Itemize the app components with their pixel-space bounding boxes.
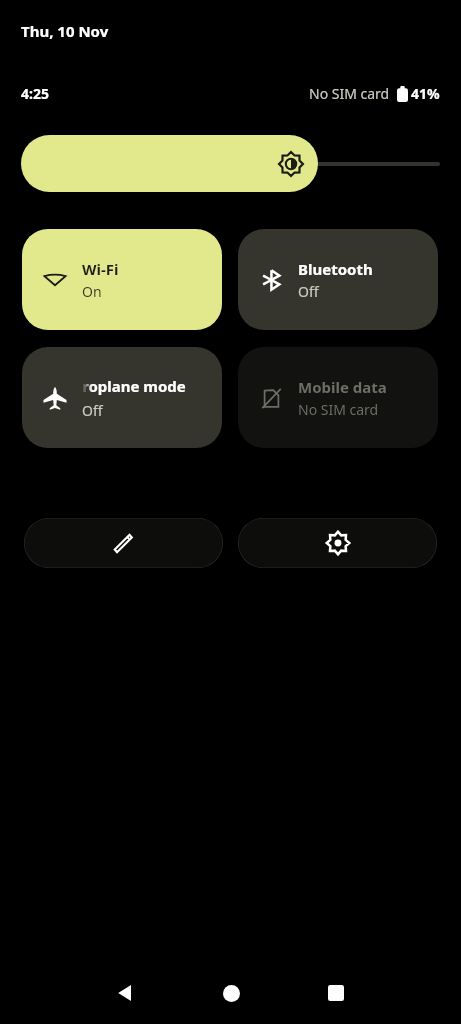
staticText: Off (82, 401, 103, 420)
staticText: No SIM card (309, 84, 390, 103)
staticText: 41% (411, 84, 440, 103)
staticText: Off (298, 282, 319, 301)
staticText: Bluetooth (298, 259, 373, 279)
button[interactable]: Back (95, 963, 155, 1023)
staticText: roplane mode (82, 376, 186, 396)
staticText: On (82, 282, 102, 301)
staticText: Wi-Fi (82, 259, 119, 279)
button[interactable]: roplane mode (22, 347, 222, 448)
button[interactable]: Recent apps (306, 963, 366, 1023)
button[interactable]: Settings (238, 518, 437, 568)
button[interactable]: Edit tiles (24, 518, 223, 568)
button[interactable]: Mobile data (238, 347, 438, 448)
staticText: 4:25 (21, 84, 49, 103)
button[interactable]: Brightness (21, 135, 440, 192)
button[interactable]: Wi-Fi (22, 229, 222, 330)
button[interactable]: Bluetooth (238, 229, 438, 330)
staticText: Thu, 10 Nov (21, 21, 109, 41)
button[interactable]: Home (201, 963, 261, 1023)
staticText: Mobile data (298, 377, 387, 397)
staticText: No SIM card (298, 400, 379, 419)
